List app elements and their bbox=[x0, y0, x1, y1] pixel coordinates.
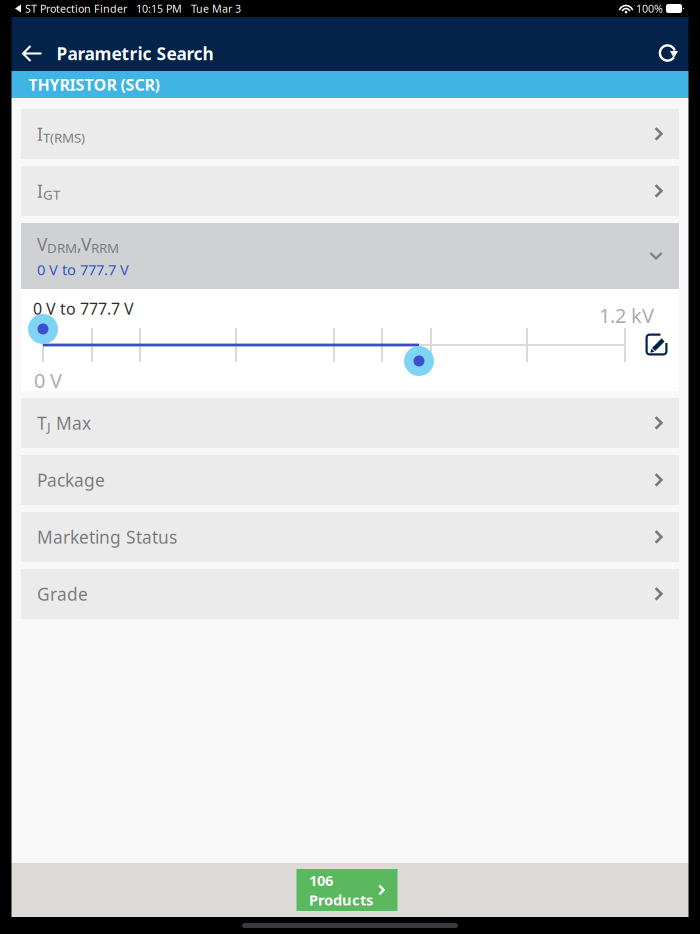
button[interactable]: V bbox=[21, 223, 679, 289]
staticText: GT bbox=[43, 186, 60, 203]
staticText: I bbox=[37, 122, 43, 145]
staticText: DRM bbox=[47, 239, 77, 257]
staticText: 0 V bbox=[34, 367, 62, 394]
button[interactable]: Edit range bbox=[645, 333, 668, 356]
staticText: 0 V to 777.7 V bbox=[33, 298, 134, 319]
staticText: Package bbox=[37, 468, 105, 491]
button[interactable]: Grade bbox=[21, 569, 679, 619]
staticText: THYRISTOR (SCR) bbox=[28, 74, 159, 95]
staticText: Max bbox=[51, 411, 91, 434]
staticText: ST Protection Finder bbox=[22, 1, 127, 16]
staticText: T bbox=[37, 411, 47, 434]
staticText: T(RMS) bbox=[43, 129, 85, 146]
button[interactable]: Package bbox=[21, 455, 679, 505]
button[interactable]: I bbox=[21, 109, 679, 159]
staticText: 1.2 kV bbox=[599, 302, 654, 329]
staticText: ,V bbox=[77, 233, 91, 256]
staticText: 0 V to 777.7 V bbox=[37, 260, 129, 279]
staticText: 100% bbox=[633, 1, 666, 16]
staticText: 10:15 PM Tue Mar 3 bbox=[127, 1, 241, 16]
staticText: 106 Products bbox=[309, 870, 373, 909]
button[interactable]: I bbox=[21, 166, 679, 216]
staticText: Grade bbox=[37, 582, 88, 605]
button[interactable]: Refresh bbox=[656, 42, 679, 65]
staticText: I bbox=[37, 179, 43, 202]
staticText: Parametric Search bbox=[56, 42, 213, 65]
staticText: V bbox=[37, 233, 47, 256]
staticText: J bbox=[47, 418, 51, 435]
button[interactable]: Back bbox=[20, 43, 43, 64]
staticText: RRM bbox=[91, 239, 119, 257]
staticText: Marketing Status bbox=[37, 525, 177, 548]
button[interactable]: 106 Products bbox=[299, 869, 400, 911]
button[interactable]: T bbox=[21, 398, 679, 448]
button[interactable]: Marketing Status bbox=[21, 512, 679, 562]
